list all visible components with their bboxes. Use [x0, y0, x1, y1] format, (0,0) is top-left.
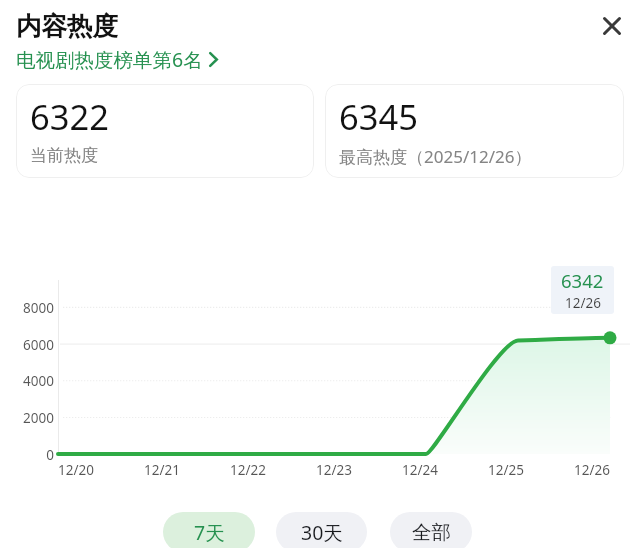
button[interactable]: 电视剧热度榜单第6名: [16, 46, 218, 73]
button[interactable]: 全部: [390, 512, 472, 548]
staticText: 12/23: [316, 461, 352, 479]
staticText: 4000: [23, 372, 54, 390]
button[interactable]: 6322: [16, 84, 314, 178]
staticText: 12/20: [58, 461, 94, 479]
staticText: 12/24: [402, 461, 438, 479]
staticText: 12/25: [488, 461, 524, 479]
staticText: 电视剧热度榜单第6名: [16, 46, 203, 73]
button[interactable]: Close: [593, 7, 630, 44]
staticText: 6322: [30, 93, 109, 140]
staticText: 0: [46, 446, 54, 464]
staticText: 12/26: [565, 294, 601, 312]
staticText: 6000: [23, 336, 54, 354]
staticText: 12/22: [230, 461, 266, 479]
staticText: 内容热度: [16, 10, 118, 42]
button[interactable]: 30天: [276, 512, 367, 548]
button[interactable]: 6345: [325, 84, 624, 178]
button[interactable]: 7天: [163, 512, 255, 548]
staticText: 全部: [412, 520, 451, 545]
staticText: 6342: [561, 268, 604, 293]
staticText: 6345: [339, 93, 418, 140]
staticText: 30天: [301, 519, 343, 546]
staticText: 12/26: [574, 461, 610, 479]
staticText: 当前热度: [30, 145, 98, 166]
staticText: 12/21: [144, 461, 180, 479]
staticText: 2000: [23, 409, 54, 427]
staticText: 7天: [194, 519, 225, 546]
staticText: 8000: [23, 299, 54, 317]
staticText: 最高热度（2025/12/26）: [339, 145, 532, 168]
